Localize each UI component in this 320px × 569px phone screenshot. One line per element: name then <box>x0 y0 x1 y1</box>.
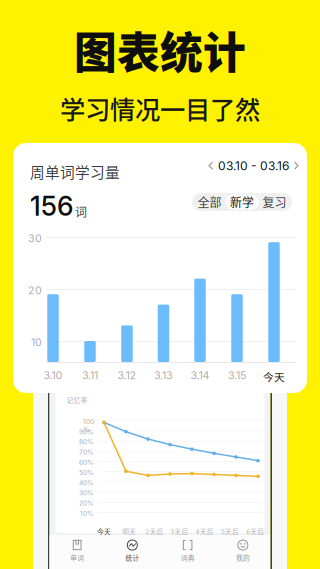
staticText: 3.15 <box>228 369 246 382</box>
staticText: 90% <box>79 428 94 436</box>
staticText: 20 <box>28 284 42 297</box>
staticText: 记忆率 <box>66 395 87 405</box>
staticText: 明天 <box>122 526 136 536</box>
staticText: 3.11 <box>82 369 98 382</box>
staticText: 复习 <box>262 193 286 211</box>
staticText: 30% <box>79 489 94 497</box>
staticText: 新学 <box>230 193 254 211</box>
button[interactable]: 我的 <box>215 535 270 569</box>
staticText: 单词 <box>70 553 84 562</box>
staticText: 80% <box>79 438 94 446</box>
staticText: 今天 <box>263 369 285 384</box>
staticText: 4天后 <box>196 526 214 536</box>
staticText: 统计 <box>125 553 139 562</box>
staticText: 3.13 <box>154 369 173 382</box>
staticText: 10% <box>80 509 94 517</box>
staticText: 3.10 <box>43 369 62 382</box>
button[interactable]: 统计 <box>105 535 160 569</box>
button[interactable]: 全部 <box>193 194 225 209</box>
button[interactable]: Next week <box>291 158 301 174</box>
staticText: 3.14 <box>190 369 209 382</box>
staticText: 3.12 <box>117 369 136 382</box>
staticText: 今天 <box>97 526 111 536</box>
staticText: 词典 <box>181 553 195 562</box>
staticText: 我的 <box>236 553 250 562</box>
staticText: 60% <box>79 458 94 466</box>
staticText: 全部 <box>197 193 221 211</box>
staticText: 10 <box>31 336 42 349</box>
staticText: 40% <box>79 479 94 487</box>
staticText: 20% <box>79 499 94 507</box>
button[interactable]: 新学 <box>225 194 258 209</box>
staticText: 30 <box>28 232 42 245</box>
staticText: 156 <box>30 190 73 222</box>
staticText: 学习情况一目了然 <box>60 90 260 126</box>
staticText: 5天后 <box>221 526 239 536</box>
staticText: 3天后 <box>171 526 189 536</box>
button[interactable]: Previous week <box>206 158 216 174</box>
staticText: 图表统计 <box>74 19 246 81</box>
staticText: 50% <box>79 468 94 477</box>
button[interactable]: 复习 <box>258 194 290 209</box>
staticText: 6天后 <box>246 526 264 536</box>
button[interactable]: 词典 <box>160 535 215 569</box>
staticText: 词 <box>75 203 87 220</box>
button[interactable]: 单词 <box>49 535 105 569</box>
staticText: 70% <box>79 448 94 456</box>
staticText: 周单词学习量 <box>30 161 120 182</box>
staticText: 100% <box>83 417 94 434</box>
staticText: 2天后 <box>145 526 163 536</box>
staticText: 03.10 - 03.16 <box>218 159 289 173</box>
